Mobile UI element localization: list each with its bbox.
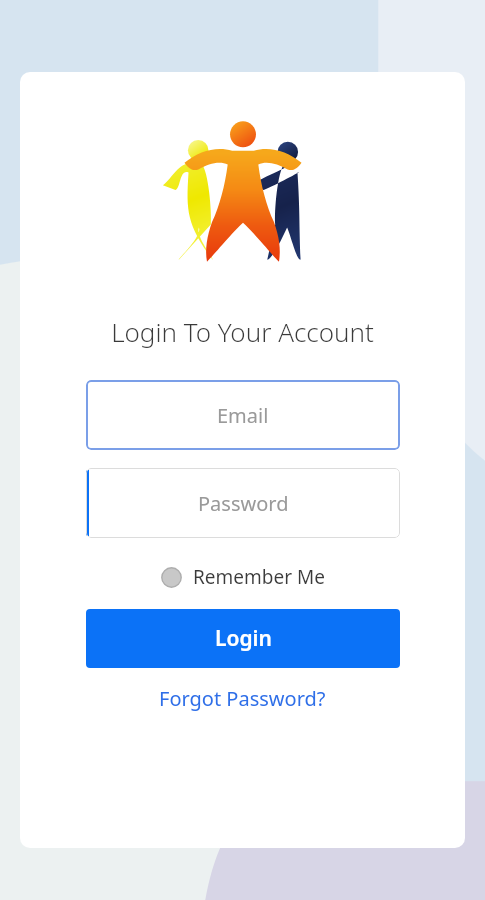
button[interactable]: Email [86, 380, 400, 450]
staticText: Login To Your Account [111, 314, 374, 349]
staticText: Remember Me [193, 564, 325, 590]
staticText: Login [215, 624, 272, 653]
staticText: Forgot Password? [159, 685, 326, 712]
staticText: Password [198, 490, 289, 517]
button[interactable]: Password [86, 468, 400, 538]
staticText: Email [217, 402, 269, 429]
button[interactable]: Login [86, 609, 400, 668]
button[interactable]: Remember Me [157, 561, 329, 593]
button[interactable]: Forgot Password? [153, 682, 332, 715]
